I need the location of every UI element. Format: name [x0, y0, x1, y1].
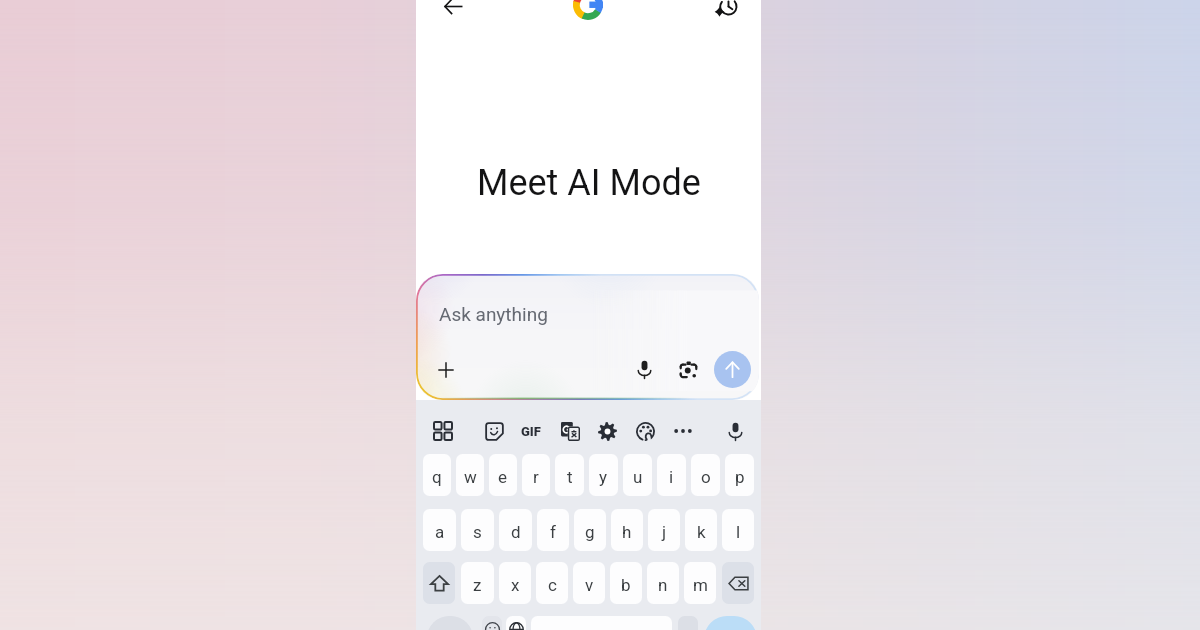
button[interactable]: i: [657, 454, 686, 496]
button[interactable]: n: [647, 562, 679, 604]
button[interactable]: u: [623, 454, 652, 496]
button[interactable]: w: [456, 454, 484, 496]
button[interactable]: k: [685, 509, 717, 551]
staticText: GIF: [521, 424, 541, 439]
button[interactable]: o: [691, 454, 720, 496]
staticText: w: [464, 467, 477, 487]
button[interactable]: Symbols: [427, 616, 473, 630]
staticText: a: [435, 522, 445, 542]
staticText: z: [473, 575, 482, 595]
staticText: c: [548, 575, 557, 595]
staticText: m: [693, 575, 708, 595]
button[interactable]: p: [725, 454, 754, 496]
staticText: p: [735, 467, 745, 487]
staticText: Meet AI Mode: [477, 162, 701, 204]
staticText: s: [473, 522, 482, 542]
button[interactable]: Themes: [631, 417, 659, 445]
button[interactable]: More options: [669, 417, 697, 445]
button[interactable]: z: [461, 562, 494, 604]
staticText: b: [621, 575, 631, 595]
button[interactable]: GIF: [518, 418, 544, 444]
staticText: x: [511, 575, 520, 595]
button[interactable]: b: [610, 562, 642, 604]
button[interactable]: Change language: [506, 616, 526, 630]
staticText: h: [622, 522, 632, 542]
button[interactable]: f: [537, 509, 569, 551]
button[interactable]: [416, 274, 759, 400]
button[interactable]: Period: [678, 616, 698, 630]
button[interactable]: j: [648, 509, 680, 551]
staticText: i: [669, 467, 674, 487]
staticText: Ask anything: [439, 303, 548, 325]
staticText: v: [585, 575, 594, 595]
button[interactable]: Google: [569, 0, 607, 24]
button[interactable]: t: [555, 454, 584, 496]
button[interactable]: m: [684, 562, 716, 604]
button[interactable]: v: [573, 562, 605, 604]
button[interactable]: Stickers: [480, 417, 508, 445]
button[interactable]: Voice search: [628, 353, 660, 385]
button[interactable]: Shift: [423, 562, 455, 604]
staticText: d: [511, 522, 521, 542]
button[interactable]: Settings: [593, 417, 621, 445]
staticText: j: [662, 522, 667, 542]
button[interactable]: Backspace: [722, 562, 754, 604]
button[interactable]: Google Lens: [672, 353, 704, 385]
button[interactable]: Search history: [703, 0, 747, 31]
button[interactable]: c: [536, 562, 568, 604]
button[interactable]: h: [611, 509, 643, 551]
button[interactable]: l: [722, 509, 754, 551]
button[interactable]: x: [499, 562, 531, 604]
button[interactable]: e: [489, 454, 517, 496]
staticText: l: [736, 522, 741, 542]
button[interactable]: q: [423, 454, 451, 496]
button[interactable]: Apps: [429, 417, 457, 445]
button[interactable]: Back: [433, 0, 473, 26]
button[interactable]: Translate: [556, 417, 584, 445]
button[interactable]: g: [574, 509, 606, 551]
button[interactable]: Send: [714, 351, 751, 388]
button[interactable]: s: [461, 509, 494, 551]
button[interactable]: Emoji: [482, 616, 502, 630]
button[interactable]: y: [589, 454, 618, 496]
staticText: o: [701, 467, 711, 487]
staticText: q: [432, 467, 442, 487]
staticText: e: [498, 467, 508, 487]
button[interactable]: r: [522, 454, 550, 496]
staticText: n: [658, 575, 668, 595]
staticText: t: [567, 467, 573, 487]
button[interactable]: Enter: [704, 616, 757, 630]
staticText: y: [599, 467, 608, 487]
button[interactable]: Add: [430, 354, 462, 386]
button[interactable]: a: [423, 509, 456, 551]
button[interactable]: d: [499, 509, 532, 551]
staticText: r: [533, 467, 539, 487]
staticText: u: [633, 467, 643, 487]
button[interactable]: Voice typing: [721, 417, 749, 445]
staticText: f: [550, 522, 556, 542]
staticText: g: [585, 522, 595, 542]
staticText: k: [697, 522, 706, 542]
